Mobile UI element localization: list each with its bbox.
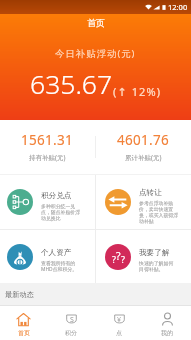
staticText: ? — [121, 253, 125, 265]
staticText: 多种积分统一兑 — [41, 203, 76, 209]
staticText: MHD点和积分。 — [41, 266, 78, 273]
button[interactable]: S — [47, 306, 95, 340]
staticText: 点转让 — [139, 188, 162, 198]
staticText: 点，随点补贴价浮 — [41, 209, 81, 215]
staticText: 换，或买入获得浮 — [139, 212, 179, 218]
staticText: 点 — [116, 329, 122, 337]
staticText: S — [70, 315, 74, 325]
staticText: 首页 — [18, 329, 30, 337]
staticText: (↑ 12%) — [113, 84, 162, 99]
staticText: ? — [112, 253, 116, 265]
staticText: 积分兑点 — [41, 191, 72, 201]
button[interactable]: ? — [96, 230, 191, 283]
staticText: 我要了解 — [139, 248, 170, 258]
staticText: 快速的了解如何 — [139, 260, 174, 266]
staticText: 个人资产 — [41, 248, 72, 258]
staticText: 今日补贴浮动(元) — [55, 47, 136, 60]
button[interactable]: 我的 — [143, 306, 191, 340]
staticText: ¥ — [117, 315, 122, 325]
button[interactable]: 个人资产 — [0, 230, 95, 283]
staticText: ? — [116, 249, 121, 263]
staticText: 635.67 — [30, 66, 113, 102]
staticText: 参考点浮动补贴 — [139, 200, 174, 206]
staticText: 首页 — [87, 17, 105, 28]
staticText: 动补贴 — [139, 218, 154, 224]
staticText: 4601.76 — [117, 131, 170, 149]
staticText: 积分 — [65, 329, 77, 337]
button[interactable]: 1561.31 — [0, 120, 95, 174]
staticText: 价，卖出快速置 — [139, 206, 174, 212]
button[interactable]: 点转让 — [96, 175, 191, 229]
button[interactable]: 积分兑点 — [0, 175, 95, 229]
staticText: 累计补贴(元) — [125, 153, 162, 162]
staticText: 12:00 — [168, 2, 188, 12]
staticText: 目得补贴。 — [139, 266, 164, 272]
button[interactable]: ¥ — [95, 306, 143, 340]
staticText: 1561.31 — [21, 131, 74, 149]
button[interactable]: 4601.76 — [96, 120, 191, 174]
button[interactable]: 首页 — [0, 306, 47, 340]
staticText: 查看我所持有的 — [41, 260, 76, 266]
staticText: 持有补贴(元) — [29, 153, 66, 162]
staticText: 最新动态 — [5, 290, 34, 299]
staticText: 动兑换比 — [41, 215, 61, 221]
staticText: 我的 — [161, 329, 173, 337]
